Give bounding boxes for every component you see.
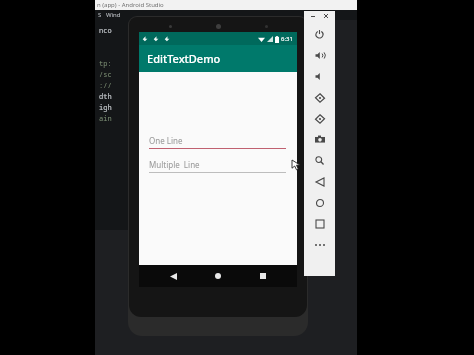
staticText: 6:31: [281, 35, 293, 43]
button[interactable]: Multiple Line: [149, 159, 286, 173]
button[interactable]: Volume down: [304, 66, 335, 87]
staticText: /sc: [99, 70, 112, 80]
button[interactable]: Volume up: [304, 45, 335, 66]
button[interactable]: Zoom: [304, 150, 335, 171]
button[interactable]: Recent apps: [252, 265, 274, 287]
staticText: nco: [99, 26, 112, 36]
staticText: igh: [99, 103, 112, 113]
button[interactable]: Minimize: [309, 12, 317, 20]
button[interactable]: Back: [162, 265, 184, 287]
staticText: S Wind: [98, 11, 121, 19]
staticText: tp:: [99, 59, 112, 69]
staticText: n (app) - Android Studio: [97, 1, 164, 9]
button[interactable]: One Line: [149, 135, 286, 149]
button[interactable]: Home: [304, 192, 335, 213]
staticText: dth: [99, 92, 112, 102]
staticText: EditTextDemo: [147, 51, 221, 66]
button[interactable]: Power: [304, 24, 335, 45]
button[interactable]: Home: [207, 265, 229, 287]
button[interactable]: Back: [304, 171, 335, 192]
staticText: Multiple Line: [149, 159, 200, 170]
button[interactable]: Rotate left: [304, 87, 335, 108]
staticText: ain: [99, 114, 112, 124]
button[interactable]: Rotate right: [304, 108, 335, 129]
button[interactable]: EditTextDemo: [139, 45, 297, 72]
button[interactable]: More: [304, 234, 335, 255]
staticText: ://: [99, 81, 112, 91]
button[interactable]: Take screenshot: [304, 129, 335, 150]
button[interactable]: Close: [322, 12, 330, 20]
staticText: One Line: [149, 135, 183, 146]
button[interactable]: Overview: [304, 213, 335, 234]
